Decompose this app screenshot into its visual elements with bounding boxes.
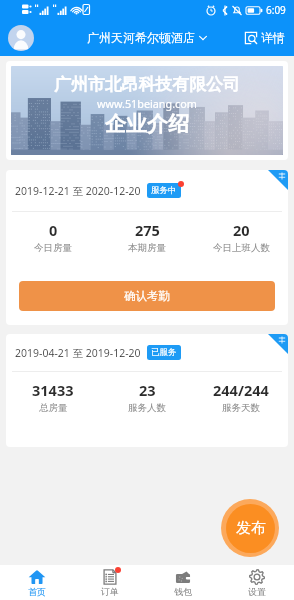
staticText: 今日房量 <box>34 242 72 254</box>
staticText: www.51beiang.com <box>97 96 197 111</box>
staticText: 275 <box>135 220 160 240</box>
staticText: 31433 <box>32 380 74 400</box>
staticText: 6:09 <box>266 3 286 17</box>
staticText: 本期房量 <box>128 242 166 254</box>
button[interactable]: 广州市北昂科技有限公司 <box>11 66 283 155</box>
button[interactable]: 详情 <box>236 19 294 56</box>
staticText: 23 <box>139 380 156 400</box>
button[interactable]: 首页 <box>0 565 73 600</box>
button[interactable]: 订单 <box>73 565 146 600</box>
staticText: 设置 <box>248 586 266 597</box>
staticText: 服务天数 <box>222 402 260 414</box>
staticText: 2019-04-21 至 2019-12-20 <box>15 346 141 360</box>
staticText: 企业介绍 <box>105 111 189 137</box>
button[interactable]: Profile <box>8 25 34 51</box>
staticText: 20 <box>233 220 250 240</box>
staticText: 详情 <box>261 30 285 45</box>
staticText: 广州天河希尔顿酒店 <box>87 30 195 45</box>
staticText: 今日上班人数 <box>213 242 270 254</box>
staticText: 244/244 <box>213 380 269 400</box>
staticText: 广州市北昂科技有限公司 <box>54 74 240 95</box>
button[interactable]: 钱包 <box>146 565 220 600</box>
staticText: 总房量 <box>39 402 68 414</box>
button[interactable]: 设置 <box>220 565 294 600</box>
staticText: 订单 <box>101 586 119 597</box>
staticText: 钱包 <box>174 586 192 597</box>
staticText: 首页 <box>28 586 46 597</box>
staticText: 0 <box>49 220 58 240</box>
staticText: 已服务 <box>151 347 177 358</box>
staticText: 服务人数 <box>128 402 166 414</box>
button[interactable]: 确认考勤 <box>19 281 275 311</box>
button[interactable]: 发布 <box>221 499 279 557</box>
button[interactable]: 广州天河希尔顿酒店 <box>87 30 207 45</box>
staticText: 服务中 <box>151 185 177 196</box>
staticText: 2019-12-21 至 2020-12-20 <box>15 184 141 198</box>
staticText: 确认考勤 <box>124 289 170 303</box>
staticText: 发布 <box>236 519 266 538</box>
